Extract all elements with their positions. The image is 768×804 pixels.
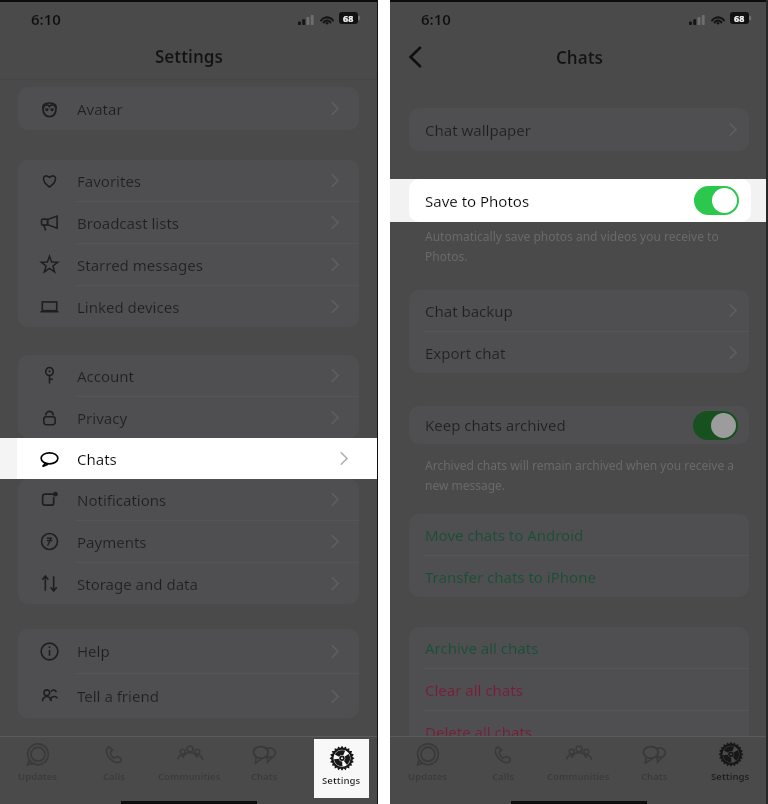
staticText: Calls — [492, 770, 514, 783]
button[interactable]: Delete all chats — [409, 711, 749, 752]
button[interactable]: Updates — [408, 737, 448, 783]
staticText: Settings — [322, 774, 361, 787]
button[interactable]: Toggle — [693, 411, 738, 440]
button[interactable]: Settings — [314, 739, 369, 798]
staticText: 68 — [343, 12, 354, 24]
staticText: Notifications — [77, 490, 167, 510]
staticText: Chats — [556, 46, 603, 69]
button[interactable]: Chat backup — [409, 290, 749, 331]
button[interactable]: Help — [18, 629, 359, 673]
button[interactable]: Privacy — [18, 397, 359, 438]
staticText: Keep chats archived — [425, 415, 566, 435]
staticText: Settings — [155, 45, 223, 68]
staticText: Chats — [251, 770, 278, 783]
staticText: Move chats to Android — [425, 525, 584, 545]
staticText: Account — [77, 366, 135, 386]
button[interactable]: Payments — [18, 521, 359, 562]
button[interactable]: Save to Photos — [409, 179, 751, 222]
staticText: Archive all chats — [425, 638, 539, 658]
button[interactable]: Linked devices — [18, 286, 359, 327]
staticText: Communities — [158, 770, 221, 783]
staticText: Archived chats will remain archived when… — [425, 457, 740, 494]
staticText: 6:10 — [421, 9, 451, 29]
button[interactable]: Chats — [251, 737, 278, 783]
staticText: Payments — [77, 532, 147, 552]
staticText: Tell a friend — [77, 686, 159, 706]
staticText: Settings — [711, 770, 750, 783]
staticText: Chat backup — [425, 301, 513, 321]
staticText: Save to Photos — [425, 191, 530, 211]
button[interactable]: Starred messages — [18, 244, 359, 285]
staticText: Favorites — [77, 171, 142, 191]
staticText: Starred messages — [77, 255, 203, 275]
staticText: Delete all chats — [425, 722, 533, 742]
button[interactable]: Clear all chats — [409, 669, 749, 710]
button[interactable]: Chat wallpaper — [409, 108, 749, 151]
button[interactable]: Communities — [158, 737, 221, 783]
staticText: Chat wallpaper — [425, 120, 531, 140]
button[interactable]: Keep chats archived — [409, 406, 749, 444]
staticText: 68 — [734, 12, 745, 24]
button[interactable]: Updates — [18, 737, 58, 783]
staticText: 6:10 — [31, 9, 61, 29]
button[interactable]: Broadcast lists — [18, 202, 359, 243]
staticText: Avatar — [77, 99, 123, 119]
staticText: Clear all chats — [425, 680, 523, 700]
button[interactable]: Back — [398, 40, 432, 74]
button[interactable]: Calls — [101, 737, 127, 783]
staticText: Updates — [408, 770, 448, 783]
button[interactable]: Account — [18, 355, 359, 396]
button[interactable]: Transfer chats to iPhone — [409, 556, 749, 597]
button[interactable]: Move chats to Android — [409, 514, 749, 555]
button[interactable]: Storage and data — [18, 563, 359, 604]
staticText: Chats — [641, 770, 668, 783]
staticText: Chats — [77, 449, 117, 469]
button[interactable]: Archive all chats — [409, 627, 749, 668]
button[interactable]: Settings — [711, 737, 750, 783]
staticText: Storage and data — [77, 574, 198, 594]
staticText: Updates — [18, 770, 58, 783]
button[interactable]: Calls — [490, 737, 516, 783]
button[interactable]: Tell a friend — [18, 674, 359, 718]
button[interactable]: Chats — [17, 438, 377, 479]
button[interactable]: Toggle — [694, 186, 739, 215]
staticText: Linked devices — [77, 297, 180, 317]
button[interactable]: Notifications — [18, 479, 359, 520]
staticText: Export chat — [425, 343, 506, 363]
button[interactable]: Avatar — [18, 87, 359, 130]
staticText: Broadcast lists — [77, 213, 180, 233]
staticText: Calls — [103, 770, 125, 783]
button[interactable]: Favorites — [18, 160, 359, 201]
staticText: Communities — [547, 770, 610, 783]
staticText: Help — [77, 641, 110, 661]
staticText: Transfer chats to iPhone — [425, 567, 596, 587]
button[interactable]: Communities — [547, 737, 610, 783]
button[interactable]: Export chat — [409, 332, 749, 373]
button[interactable]: Chats — [641, 737, 668, 783]
staticText: Privacy — [77, 408, 128, 428]
staticText: Automatically save photos and videos you… — [425, 228, 726, 265]
